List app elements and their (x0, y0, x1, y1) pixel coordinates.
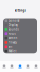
button[interactable]: Sounds (3, 27, 37, 31)
staticText: Settings (14, 9, 25, 12)
button[interactable]: Tab 1 (0, 61, 8, 72)
button[interactable]: Focus (3, 31, 37, 36)
button[interactable]: Tab 4 (24, 61, 32, 72)
button[interactable]: Tab 3 (16, 61, 24, 72)
button[interactable]: Siri (3, 45, 37, 49)
staticText: Focus (8, 32, 15, 35)
staticText: Screen (8, 36, 17, 40)
button[interactable]: Tab 2 (8, 61, 16, 72)
staticText: Privacy (8, 41, 16, 44)
staticText: Display (8, 23, 17, 27)
button[interactable]: Wallet (3, 49, 37, 53)
button[interactable]: Screen (3, 36, 37, 40)
staticText: Siri (8, 45, 12, 48)
button[interactable]: Tab 5 (32, 61, 40, 72)
staticText: Wallet (8, 49, 16, 53)
staticText: General (8, 19, 19, 22)
staticText: Sounds (8, 28, 18, 31)
button[interactable]: Privacy (3, 40, 37, 44)
button[interactable]: Display (3, 23, 37, 27)
button[interactable]: General (3, 18, 37, 23)
